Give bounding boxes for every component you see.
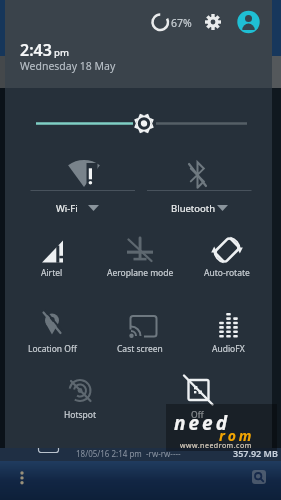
button[interactable] — [30, 108, 250, 140]
staticText: Aeroplane mode — [107, 267, 174, 279]
button[interactable] — [12, 308, 92, 358]
staticText: rom — [219, 426, 255, 445]
staticText: 357.92 MB — [233, 447, 278, 459]
button[interactable] — [145, 6, 215, 38]
staticText: 2:43 — [20, 39, 52, 61]
button[interactable] — [187, 230, 267, 280]
staticText: www.needrom.com — [180, 441, 252, 451]
staticText: Wednesday 18 May — [20, 59, 116, 73]
staticText: Hotspot — [64, 409, 97, 421]
button[interactable] — [8, 462, 38, 496]
button[interactable] — [187, 308, 267, 358]
button[interactable] — [201, 8, 227, 36]
button[interactable] — [157, 372, 237, 420]
staticText: Off — [191, 409, 204, 421]
button[interactable] — [100, 308, 180, 358]
button[interactable] — [30, 150, 140, 220]
staticText: Bluetooth — [171, 202, 216, 215]
button[interactable] — [100, 230, 180, 280]
staticText: Auto-rotate — [204, 267, 250, 279]
staticText: Location Off — [28, 343, 77, 355]
button[interactable] — [252, 470, 266, 484]
staticText: need — [174, 410, 230, 436]
staticText: AudioFX — [212, 343, 245, 355]
staticText: Airtel — [41, 267, 63, 279]
staticText: Cast screen — [117, 343, 163, 355]
button[interactable] — [147, 150, 257, 220]
staticText: Wi-Fi — [56, 202, 78, 215]
staticText: pm — [54, 46, 69, 59]
staticText: 67% — [171, 16, 192, 30]
button[interactable] — [40, 372, 120, 420]
button[interactable] — [236, 8, 264, 36]
button[interactable] — [12, 230, 92, 280]
staticText: 18/05/16 2:14 pm -rw-rw---- — [76, 448, 181, 459]
